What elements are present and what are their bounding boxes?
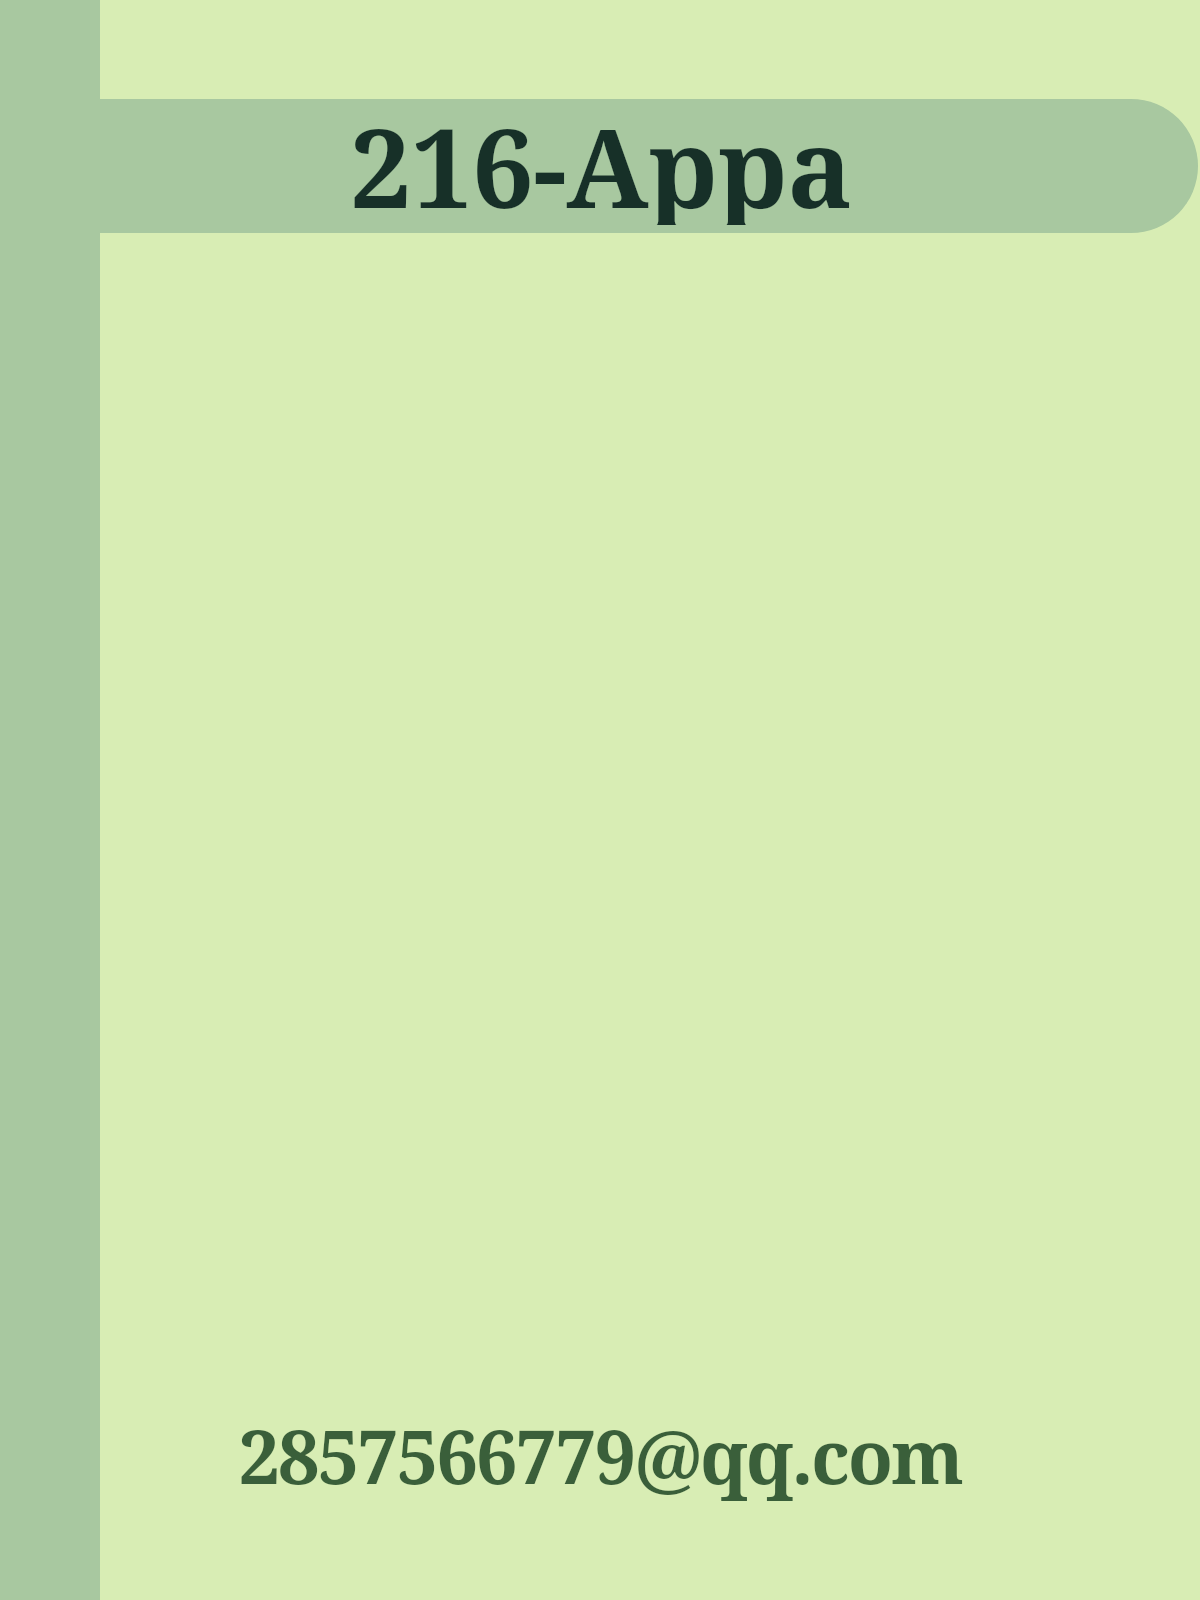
button[interactable]: 2857566779@qq.com [0, 1405, 1200, 1506]
staticText: 216-Appa [100, 99, 1150, 225]
button[interactable]: 216-Appa [100, 99, 1198, 233]
